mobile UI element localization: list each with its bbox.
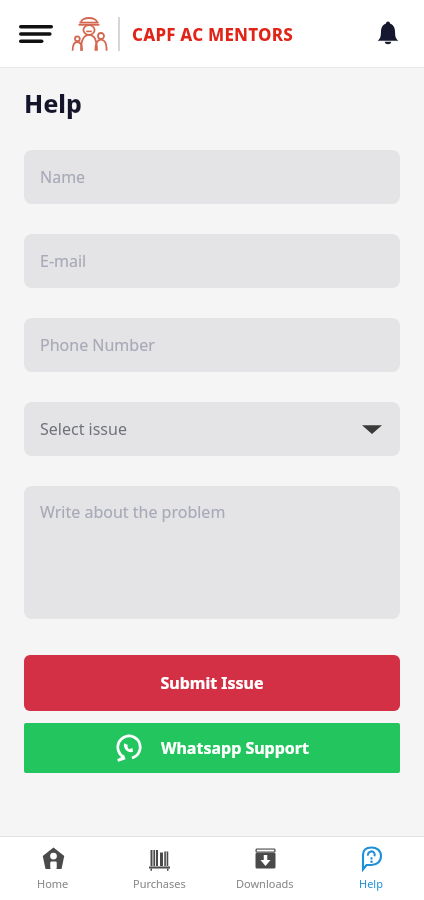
staticText: Select issue bbox=[40, 418, 127, 440]
button[interactable]: Menu bbox=[12, 10, 60, 58]
staticText: E-mail bbox=[40, 250, 87, 272]
staticText: Submit Issue bbox=[160, 672, 264, 694]
button[interactable]: Home bbox=[0, 837, 106, 900]
button[interactable]: Notifications bbox=[364, 10, 412, 58]
button[interactable]: Select issue bbox=[24, 402, 400, 456]
button[interactable]: Purchases bbox=[106, 837, 212, 900]
staticText: Help bbox=[24, 86, 82, 120]
button[interactable]: Downloads bbox=[212, 837, 318, 900]
staticText: Home bbox=[37, 876, 69, 891]
button[interactable]: Phone Number bbox=[24, 318, 400, 372]
staticText: Phone Number bbox=[40, 334, 155, 356]
button[interactable]: Name bbox=[24, 150, 400, 204]
staticText: Write about the problem bbox=[40, 501, 226, 523]
button[interactable]: Submit Issue bbox=[24, 655, 400, 711]
button[interactable]: Write about the problem bbox=[24, 486, 400, 619]
button[interactable]: Help bbox=[318, 837, 424, 900]
button[interactable]: Whatsapp Support bbox=[24, 723, 400, 773]
staticText: Downloads bbox=[236, 876, 294, 891]
staticText: Whatsapp Support bbox=[161, 737, 309, 759]
staticText: Purchases bbox=[133, 876, 186, 891]
staticText: Name bbox=[40, 166, 86, 188]
button[interactable]: E-mail bbox=[24, 234, 400, 288]
staticText: CAPF AC MENTORS bbox=[132, 23, 293, 46]
staticText: Help bbox=[359, 876, 383, 891]
